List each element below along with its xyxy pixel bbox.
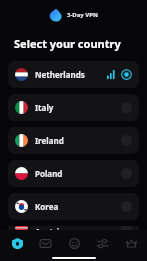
button[interactable]: Poland <box>8 160 139 187</box>
button[interactable]: Austria <box>8 226 139 230</box>
button[interactable]: Messages <box>33 231 57 255</box>
staticText: Austria <box>35 226 121 230</box>
button[interactable]: Premium <box>119 231 143 255</box>
staticText: Italy <box>35 102 121 113</box>
staticText: Korea <box>35 201 121 212</box>
staticText: Netherlands <box>35 69 107 80</box>
staticText: Poland <box>35 168 121 179</box>
button[interactable]: Italy <box>8 94 139 121</box>
staticText: Select your country <box>14 36 121 51</box>
button[interactable]: Select Poland <box>121 168 132 179</box>
button[interactable]: Select Italy <box>121 102 132 113</box>
button[interactable]: Netherlands <box>8 61 139 88</box>
button[interactable]: Profile <box>62 231 86 255</box>
button[interactable]: Ireland <box>8 127 139 154</box>
button[interactable]: Select Ireland <box>121 135 132 146</box>
staticText: Ireland <box>35 135 121 146</box>
button[interactable]: Home <box>5 231 29 255</box>
button[interactable]: Select Netherlands <box>121 69 132 80</box>
button[interactable]: Settings <box>90 231 114 255</box>
staticText: 3-Day VPN <box>67 11 98 19</box>
button[interactable]: Korea <box>8 193 139 220</box>
button[interactable]: Select Korea <box>121 201 132 212</box>
